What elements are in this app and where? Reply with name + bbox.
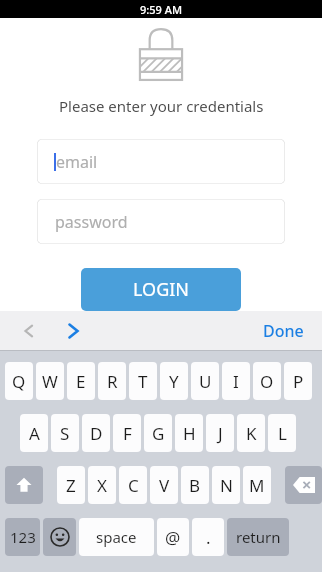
staticText: Please enter your credentials: [59, 96, 264, 116]
staticText: X: [97, 474, 107, 497]
button[interactable]: Previous field: [14, 316, 44, 346]
staticText: F: [123, 422, 132, 445]
button[interactable]: 123: [5, 518, 40, 556]
staticText: J: [218, 422, 223, 445]
button[interactable]: email: [37, 139, 285, 184]
button[interactable]: F: [113, 414, 141, 452]
staticText: password: [55, 211, 128, 233]
staticText: T: [138, 370, 148, 393]
button[interactable]: C: [119, 466, 147, 504]
button[interactable]: return: [227, 518, 289, 556]
staticText: U: [199, 370, 212, 393]
staticText: Y: [169, 370, 179, 393]
staticText: Done: [263, 320, 304, 342]
button[interactable]: .: [192, 518, 224, 556]
button[interactable]: O: [253, 362, 281, 400]
button[interactable]: Y: [160, 362, 188, 400]
button[interactable]: U: [191, 362, 219, 400]
staticText: return: [236, 527, 281, 547]
button[interactable]: J: [206, 414, 234, 452]
button[interactable]: L: [268, 414, 296, 452]
staticText: email: [56, 151, 98, 173]
button[interactable]: E: [67, 362, 95, 400]
staticText: @: [165, 526, 181, 549]
button[interactable]: space: [79, 518, 154, 556]
staticText: B: [189, 474, 201, 497]
button[interactable]: password: [37, 199, 285, 244]
button[interactable]: N: [212, 466, 240, 504]
button[interactable]: B: [181, 466, 209, 504]
staticText: A: [29, 422, 40, 445]
button[interactable]: I: [222, 362, 250, 400]
staticText: V: [159, 474, 170, 497]
staticText: LOGIN: [133, 277, 190, 302]
staticText: Z: [66, 474, 76, 497]
staticText: D: [90, 422, 103, 445]
staticText: N: [220, 474, 233, 497]
button[interactable]: R: [98, 362, 126, 400]
staticText: G: [152, 422, 165, 445]
button[interactable]: V: [150, 466, 178, 504]
staticText: R: [107, 370, 118, 393]
staticText: 123: [10, 527, 36, 547]
staticText: O: [260, 370, 274, 393]
button[interactable]: K: [237, 414, 265, 452]
button[interactable]: W: [36, 362, 64, 400]
button[interactable]: P: [284, 362, 312, 400]
button[interactable]: M: [243, 466, 271, 504]
button[interactable]: Backspace: [285, 466, 322, 504]
button[interactable]: S: [51, 414, 79, 452]
staticText: Q: [12, 370, 26, 393]
staticText: L: [278, 422, 287, 445]
staticText: H: [183, 422, 196, 445]
staticText: .: [206, 526, 211, 549]
button[interactable]: G: [144, 414, 172, 452]
staticText: S: [60, 422, 70, 445]
staticText: C: [128, 474, 139, 497]
staticText: space: [96, 527, 137, 547]
button[interactable]: H: [175, 414, 203, 452]
button[interactable]: X: [88, 466, 116, 504]
staticText: E: [76, 370, 86, 393]
button[interactable]: LOGIN: [81, 268, 241, 311]
staticText: P: [293, 370, 304, 393]
button[interactable]: Shift: [5, 466, 43, 504]
button[interactable]: Emoji: [43, 518, 76, 556]
button[interactable]: D: [82, 414, 110, 452]
staticText: M: [249, 474, 265, 497]
staticText: K: [246, 422, 257, 445]
button[interactable]: Z: [57, 466, 85, 504]
button[interactable]: T: [129, 362, 157, 400]
button[interactable]: Done: [259, 314, 308, 348]
staticText: 9:59 AM: [140, 2, 183, 17]
staticText: I: [233, 370, 239, 393]
button[interactable]: Q: [5, 362, 33, 400]
button[interactable]: Next field: [58, 316, 88, 346]
staticText: W: [42, 370, 58, 393]
button[interactable]: A: [20, 414, 48, 452]
button[interactable]: @: [157, 518, 189, 556]
